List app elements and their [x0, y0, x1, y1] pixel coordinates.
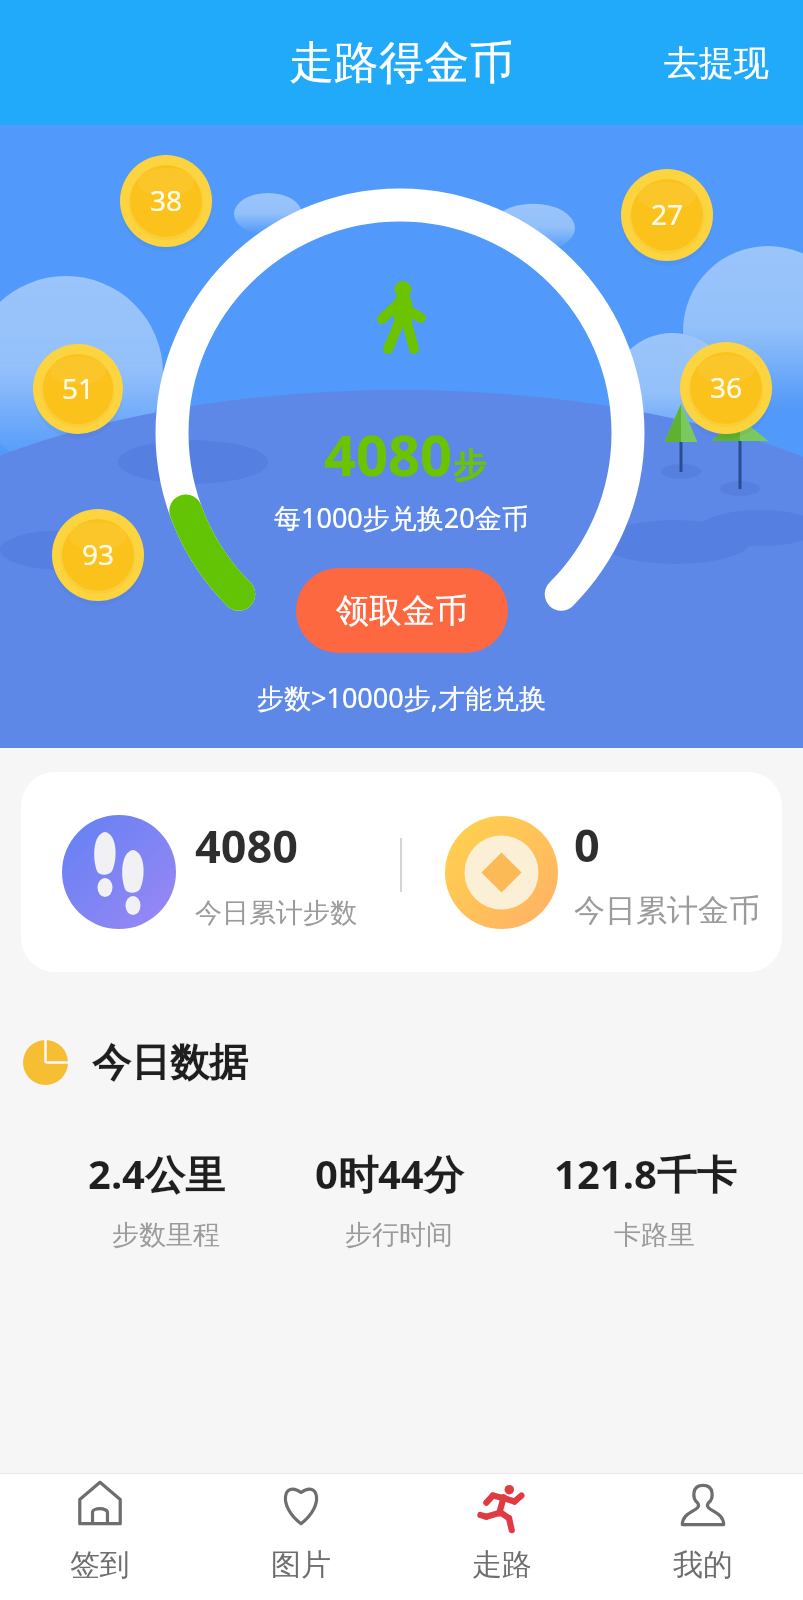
button[interactable]: Collect 36 coins [680, 342, 772, 434]
button[interactable]: 121.8千卡 [530, 1146, 770, 1252]
staticText: 2.4公里 [88, 1146, 225, 1201]
button[interactable]: Collect 27 coins [621, 169, 713, 261]
staticText: 走路 [472, 1546, 532, 1584]
staticText: 每1000步兑换20金币 [274, 499, 529, 536]
staticText: 4080 [195, 815, 298, 876]
button[interactable]: 图片 [200, 1474, 401, 1600]
button[interactable]: 我的 [602, 1474, 803, 1600]
staticText: 今日数据 [92, 1038, 248, 1087]
button[interactable]: 0时44分 [274, 1146, 514, 1252]
staticText: 今日累计金币 [574, 891, 760, 930]
staticText: 领取金币 [336, 590, 468, 632]
staticText: 签到 [70, 1546, 130, 1584]
staticText: 0 [574, 814, 600, 875]
button[interactable]: Collect 51 coins [33, 344, 123, 434]
staticText: 今日累计步数 [195, 896, 357, 930]
button[interactable]: 领取金币 [296, 568, 508, 653]
button[interactable]: 签到 [0, 1474, 200, 1600]
button[interactable]: 0 [445, 772, 782, 972]
staticText: 93 [82, 535, 115, 573]
staticText: 去提现 [664, 41, 769, 85]
button[interactable]: 今日数据 [23, 1038, 248, 1087]
staticText: 步 [453, 445, 486, 487]
staticText: 38 [150, 181, 183, 219]
staticText: 步行时间 [345, 1218, 453, 1252]
staticText: 4080 [324, 416, 453, 492]
staticText: 121.8千卡 [554, 1146, 737, 1201]
staticText: 36 [710, 368, 743, 406]
staticText: 我的 [673, 1546, 733, 1584]
staticText: 卡路里 [614, 1218, 695, 1252]
button[interactable]: Collect 93 coins [52, 509, 144, 601]
staticText: 图片 [271, 1546, 331, 1584]
staticText: 步数里程 [112, 1218, 220, 1252]
button[interactable]: 2.4公里 [41, 1146, 281, 1252]
button[interactable]: Collect 38 coins [120, 155, 212, 247]
staticText: 51 [62, 369, 95, 407]
staticText: 27 [651, 195, 684, 233]
button[interactable]: 4080 [62, 772, 402, 972]
staticText: 步数>10000步,才能兑换 [257, 679, 546, 716]
button[interactable]: 去提现 [634, 17, 803, 109]
staticText: 走路得金币 [289, 35, 514, 92]
staticText: 0时44分 [315, 1146, 464, 1201]
button[interactable]: 走路 [401, 1474, 602, 1600]
